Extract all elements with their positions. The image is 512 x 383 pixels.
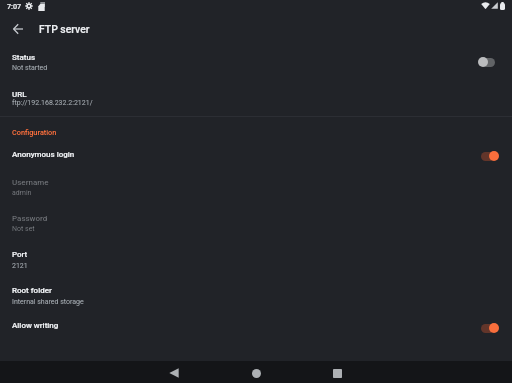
staticText: 7:07 xyxy=(7,2,22,10)
staticText: Not set xyxy=(12,225,35,233)
button[interactable]: Status xyxy=(0,46,512,80)
staticText: Username xyxy=(12,178,49,187)
staticText: Configuration xyxy=(12,128,57,137)
staticText: Anonymous login xyxy=(12,150,75,159)
staticText: Not started xyxy=(12,64,48,72)
button[interactable]: Back xyxy=(146,361,202,383)
button[interactable]: URL xyxy=(0,80,512,117)
button[interactable]: Root folder xyxy=(0,278,512,314)
staticText: Port xyxy=(12,250,28,259)
button[interactable]: Recent apps xyxy=(309,361,365,383)
staticText: admin xyxy=(12,189,32,197)
button[interactable]: Anonymous login xyxy=(0,143,512,170)
button[interactable]: Home xyxy=(228,361,284,383)
staticText: Internal shared storage xyxy=(12,298,84,306)
button[interactable]: Navigate up xyxy=(6,17,30,41)
staticText: Root folder xyxy=(12,286,52,295)
staticText: 2121 xyxy=(12,262,28,270)
staticText: FTP server xyxy=(39,23,90,35)
button[interactable]: Username xyxy=(0,170,512,206)
staticText: URL xyxy=(12,90,27,99)
staticText: Password xyxy=(12,214,48,223)
button[interactable]: Allow writing xyxy=(0,314,512,345)
staticText: Status xyxy=(12,53,36,62)
button[interactable]: Password xyxy=(0,206,512,242)
button[interactable]: Port xyxy=(0,242,512,278)
staticText: Allow writing xyxy=(12,321,59,330)
staticText: ftp://192.168.232.2:2121/ xyxy=(12,99,93,107)
